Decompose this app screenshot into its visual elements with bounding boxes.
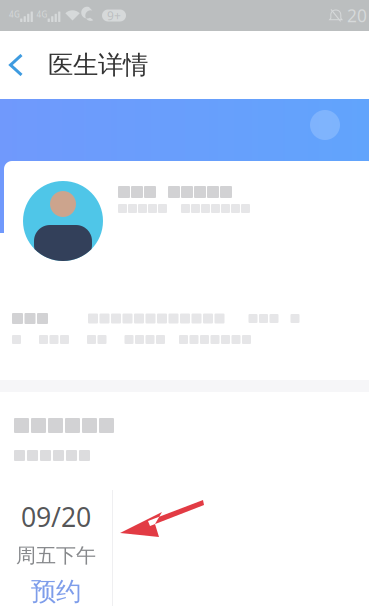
staticText: 09/20 xyxy=(21,499,91,534)
staticText: 预约 xyxy=(31,576,81,606)
staticText: 4G xyxy=(9,9,20,20)
staticText: 4G xyxy=(36,9,47,20)
staticText: 医生详情 xyxy=(48,49,148,80)
button[interactable]: Back xyxy=(0,31,48,98)
staticText: 20 xyxy=(347,4,367,27)
button[interactable]: 09/20 xyxy=(0,490,112,606)
staticText: 周五下午 xyxy=(16,543,96,568)
staticText: 9+ xyxy=(107,7,121,23)
